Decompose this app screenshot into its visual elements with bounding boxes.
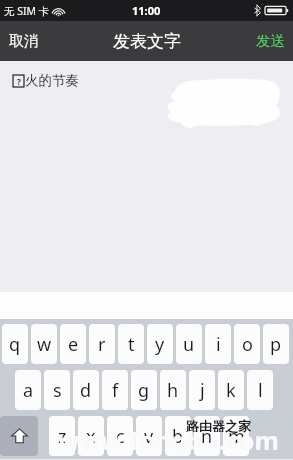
staticText: z: [58, 424, 67, 449]
staticText: u: [183, 332, 195, 357]
button[interactable]: Shift: [0, 416, 38, 456]
button[interactable]: r: [89, 324, 115, 364]
staticText: 11:00: [132, 3, 161, 18]
staticText: w: [37, 332, 52, 357]
staticText: k: [226, 378, 236, 403]
button[interactable]: j: [189, 370, 215, 410]
button[interactable]: z: [49, 416, 75, 456]
button[interactable]: k: [218, 370, 244, 410]
button[interactable]: ?: [0, 61, 293, 292]
staticText: c: [116, 424, 125, 449]
button[interactable]: b: [165, 416, 191, 456]
staticText: s: [53, 378, 62, 403]
staticText: e: [68, 332, 79, 357]
staticText: m: [228, 424, 245, 449]
staticText: r: [98, 332, 106, 357]
button[interactable]: w: [31, 324, 57, 364]
staticText: v: [144, 424, 154, 449]
button[interactable]: s: [44, 370, 70, 410]
staticText: n: [201, 424, 213, 449]
button[interactable]: d: [73, 370, 99, 410]
staticText: 发送: [256, 32, 285, 50]
staticText: www.Tongbu.com: [58, 423, 279, 457]
button[interactable]: 取消: [0, 26, 49, 57]
button[interactable]: o: [234, 324, 260, 364]
staticText: x: [86, 424, 96, 449]
staticText: o: [242, 332, 253, 357]
staticText: y: [155, 332, 165, 357]
staticText: i: [216, 332, 221, 357]
staticText: d: [80, 378, 92, 403]
staticText: a: [23, 378, 34, 403]
staticText: b: [172, 424, 184, 449]
button[interactable]: e: [60, 324, 86, 364]
button[interactable]: h: [160, 370, 186, 410]
button[interactable]: q: [2, 324, 28, 364]
staticText: 无 SIM 卡: [4, 4, 50, 18]
button[interactable]: c: [107, 416, 133, 456]
button[interactable]: t: [118, 324, 144, 364]
staticText: j: [200, 378, 205, 403]
staticText: p: [270, 332, 282, 357]
button[interactable]: x: [78, 416, 104, 456]
staticText: t: [128, 332, 135, 357]
staticText: 取消: [9, 32, 39, 51]
button[interactable]: a: [15, 370, 41, 410]
button[interactable]: n: [194, 416, 220, 456]
staticText: ?: [17, 76, 21, 87]
staticText: f: [112, 378, 119, 403]
staticText: l: [258, 378, 263, 403]
button[interactable]: g: [131, 370, 157, 410]
staticText: 火的节奏: [25, 72, 79, 89]
button[interactable]: u: [176, 324, 202, 364]
button[interactable]: y: [147, 324, 173, 364]
button[interactable]: m: [223, 416, 249, 456]
staticText: 发表文字: [113, 31, 181, 52]
staticText: q: [9, 332, 21, 357]
button[interactable]: f: [102, 370, 128, 410]
button[interactable]: 发送: [246, 26, 293, 56]
button[interactable]: i: [205, 324, 231, 364]
staticText: g: [138, 378, 150, 403]
staticText: h: [167, 378, 179, 403]
button[interactable]: l: [247, 370, 273, 410]
button[interactable]: v: [136, 416, 162, 456]
button[interactable]: p: [263, 324, 289, 364]
staticText: 路由器之家: [186, 418, 251, 434]
